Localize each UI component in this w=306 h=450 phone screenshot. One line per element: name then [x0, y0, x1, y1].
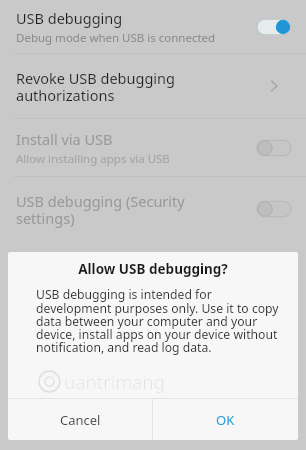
staticText: USB debugging	[16, 8, 123, 28]
button[interactable]: Install via USB	[0, 119, 306, 176]
button[interactable]: Revoke USB debugging authorizations	[0, 54, 306, 118]
staticText: uantrimang	[64, 369, 165, 395]
staticText: Revoke USB debugging authorizations	[16, 68, 175, 105]
button[interactable]: USB debugging	[0, 0, 306, 53]
staticText: Cancel	[60, 411, 101, 429]
button[interactable]: Open	[262, 74, 286, 98]
button[interactable]: Cancel	[8, 399, 152, 440]
staticText: Allow USB debugging?	[78, 260, 228, 278]
button[interactable]: Toggle off	[257, 199, 291, 219]
staticText: USB debugging (Security settings)	[16, 191, 185, 228]
staticText: Allow installing apps via USB	[16, 151, 170, 167]
button[interactable]: OK	[153, 399, 298, 440]
button[interactable]: USB debugging on	[257, 17, 291, 37]
staticText: USB debugging is intended for developmen…	[36, 286, 280, 355]
staticText: Install via USB	[16, 129, 113, 149]
staticText: OK	[216, 411, 235, 429]
staticText: Debug mode when USB is connected	[16, 30, 216, 46]
button[interactable]: Toggle off	[257, 138, 291, 158]
button[interactable]: USB debugging (Security settings)	[0, 177, 306, 241]
